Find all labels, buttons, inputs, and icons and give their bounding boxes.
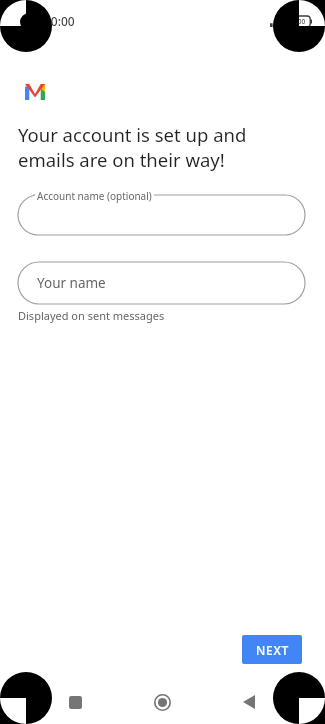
button[interactable]: Back [227,680,271,724]
staticText: Account name (optional) [37,189,152,203]
button[interactable]: Your name [18,262,305,304]
button[interactable]: Recent apps [53,680,97,724]
staticText: Displayed on sent messages [18,308,165,323]
button[interactable]: NEXT [242,635,302,664]
staticText: Your name [37,274,106,292]
staticText: 10:00 [44,13,75,29]
staticText: Your account is set up and emails are on… [18,122,247,172]
staticText: NEXT [256,642,289,658]
button[interactable]: Account name (optional) [18,189,305,235]
button[interactable]: Home [140,680,184,724]
staticText: 100 [294,17,306,26]
